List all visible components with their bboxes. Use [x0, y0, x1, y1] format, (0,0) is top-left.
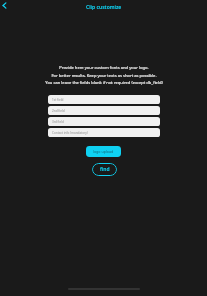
staticText: 2nd field	[52, 109, 65, 113]
staticText: logo upload	[93, 149, 114, 154]
staticText: Clip customize	[86, 4, 122, 11]
button[interactable]: 2nd field	[48, 106, 160, 115]
button[interactable]: Contact info (mandatory)	[48, 128, 160, 137]
button[interactable]: 1st field	[48, 95, 160, 104]
staticText: find	[100, 166, 110, 173]
button[interactable]: Back	[0, 0, 10, 11]
staticText: Contact info (mandatory)	[52, 131, 88, 135]
staticText: 1st field	[52, 98, 64, 102]
button[interactable]: 3rd field	[48, 117, 160, 126]
button[interactable]: logo upload	[86, 146, 121, 157]
staticText: 3rd field	[52, 120, 64, 124]
staticText: Provide here your custom fonts and your …	[45, 65, 163, 85]
button[interactable]: find	[92, 163, 117, 176]
